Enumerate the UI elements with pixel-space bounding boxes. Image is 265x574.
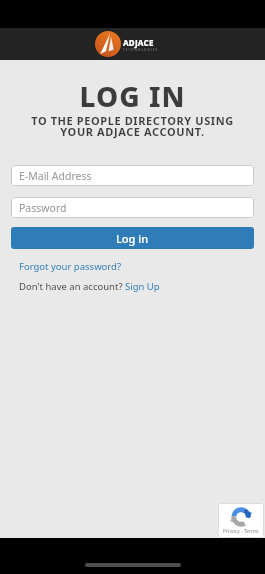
staticText: Log in — [116, 231, 149, 246]
staticText: Forgot your password? — [19, 260, 122, 273]
staticText: Don't have an account? Sign Up — [19, 280, 160, 293]
staticText: LOG IN — [0, 77, 265, 115]
staticText: ADJACE — [123, 37, 154, 48]
button[interactable]: E-Mail Address — [11, 165, 254, 186]
button[interactable]: Password — [11, 197, 254, 218]
button[interactable]: Don't have an account? Sign Up — [19, 280, 160, 293]
staticText: TO THE PEOPLE DIRECTORY USING — [0, 113, 265, 128]
button[interactable]: ADJACE — [95, 31, 159, 57]
staticText: Password — [19, 201, 67, 215]
button[interactable]: Forgot your password? — [19, 260, 122, 273]
button[interactable]: Log in — [11, 227, 254, 249]
staticText: E-Mail Address — [19, 169, 92, 183]
button[interactable]: Privacy - Terms — [218, 503, 264, 538]
staticText: YOUR ADJACE ACCOUNT. — [0, 124, 265, 139]
staticText: TECHNOLOGIES — [123, 48, 159, 52]
staticText: Privacy - Terms — [223, 528, 259, 535]
